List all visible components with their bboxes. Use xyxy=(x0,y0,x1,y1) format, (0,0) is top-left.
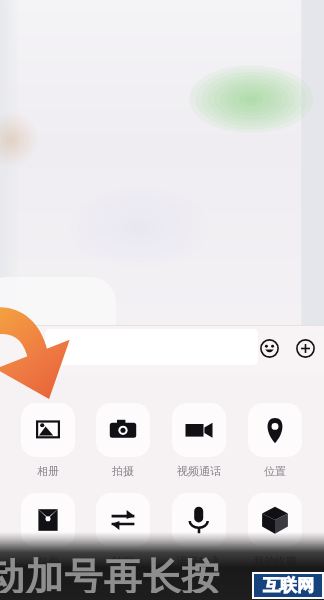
button[interactable]: Emoji xyxy=(258,337,280,359)
staticText: 位置 xyxy=(243,464,307,478)
staticText: 语音输入 xyxy=(167,554,231,568)
staticText: 动加号再长按 xyxy=(0,553,220,593)
staticText: 视频通话 xyxy=(167,464,231,478)
button[interactable]: 语音输入 xyxy=(167,493,231,568)
button[interactable]: 相册 xyxy=(16,403,80,478)
button[interactable]: 位置 xyxy=(243,403,307,478)
staticText: 红包 xyxy=(16,554,80,568)
button[interactable]: 视频通话 xyxy=(167,403,231,478)
button[interactable]: 我的收藏 xyxy=(243,493,307,568)
button[interactable]: More xyxy=(294,337,316,359)
staticText: 相册 xyxy=(16,464,80,478)
button[interactable]: 红包 xyxy=(16,493,80,568)
staticText: 互联网 xyxy=(263,575,314,596)
button[interactable] xyxy=(45,329,258,365)
staticText: 拍摄 xyxy=(91,464,155,478)
button[interactable]: 拍摄 xyxy=(91,403,155,478)
staticText: 我的收藏 xyxy=(243,554,307,568)
staticText: 转账 xyxy=(91,554,155,568)
button[interactable]: 转账 xyxy=(91,493,155,568)
